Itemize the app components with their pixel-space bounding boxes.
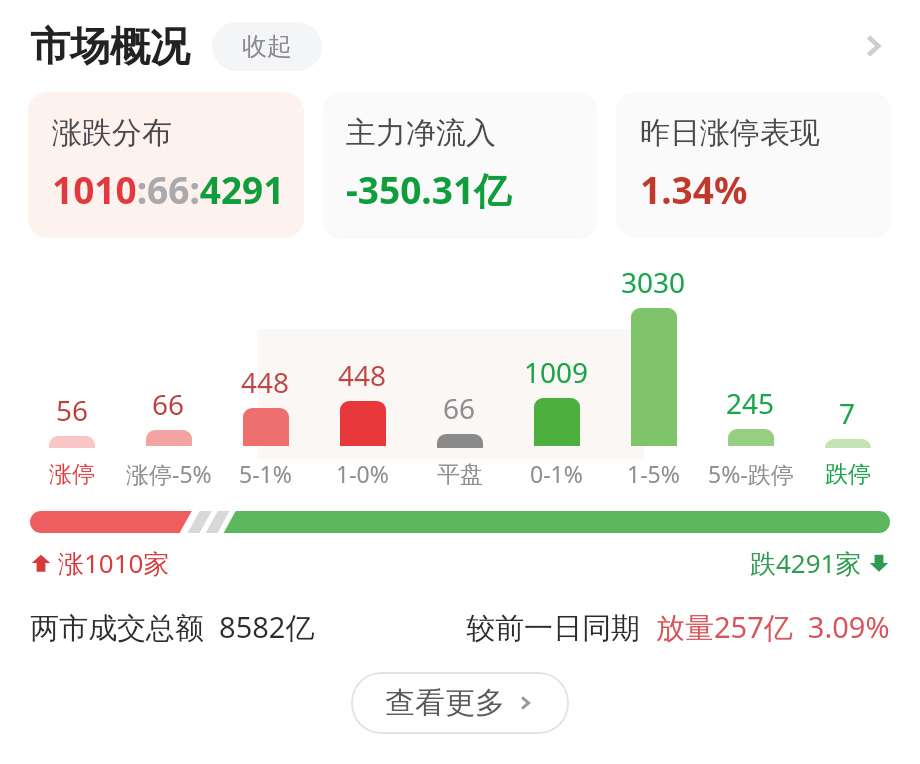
staticText: 1009 bbox=[524, 353, 589, 391]
staticText: 昨日涨停表现 bbox=[640, 114, 820, 152]
staticText: 1.34% bbox=[640, 164, 748, 214]
staticText: 245 bbox=[726, 384, 775, 422]
staticText: 涨跌分布 bbox=[52, 114, 172, 152]
staticText: 448 bbox=[241, 363, 290, 401]
staticText: 5%-跌停 bbox=[708, 458, 794, 489]
staticText: 主力净流入 bbox=[346, 114, 496, 152]
button[interactable]: More bbox=[850, 23, 896, 69]
staticText: 跌4291家 bbox=[750, 545, 862, 581]
staticText: 66 bbox=[152, 385, 185, 423]
staticText: 涨停-5% bbox=[126, 458, 212, 489]
staticText: 收起 bbox=[242, 31, 292, 62]
staticText: 0-1% bbox=[530, 458, 583, 489]
staticText: 跌停 bbox=[825, 460, 871, 489]
staticText: 56 bbox=[56, 391, 89, 429]
staticText: 平盘 bbox=[437, 460, 483, 489]
button[interactable]: 涨跌分布 bbox=[28, 92, 304, 238]
staticText: 放量257亿 3.09% bbox=[656, 607, 890, 647]
staticText: 66 bbox=[443, 389, 476, 427]
button[interactable]: 收起 bbox=[212, 22, 322, 71]
staticText: 7 bbox=[839, 394, 856, 432]
staticText: 涨停 bbox=[49, 460, 95, 489]
staticText: 1-0% bbox=[336, 458, 389, 489]
staticText: 查看更多 bbox=[385, 684, 505, 722]
staticText: 3030 bbox=[621, 263, 686, 301]
button[interactable]: 主力净流入 bbox=[322, 92, 598, 239]
button[interactable]: 查看更多 bbox=[351, 672, 569, 734]
staticText: 两市成交总额 8582亿 bbox=[30, 607, 315, 647]
staticText: 涨1010家 bbox=[58, 545, 170, 581]
staticText: -350.31亿 bbox=[346, 164, 512, 215]
staticText: 市场概况 bbox=[30, 21, 190, 71]
staticText: 1-5% bbox=[627, 458, 680, 489]
staticText: 1010:66:4291 bbox=[52, 164, 285, 214]
staticText: 448 bbox=[338, 356, 387, 394]
button[interactable]: 昨日涨停表现 bbox=[616, 92, 892, 238]
staticText: 较前一日同期 bbox=[466, 607, 656, 647]
staticText: 5-1% bbox=[239, 458, 292, 489]
